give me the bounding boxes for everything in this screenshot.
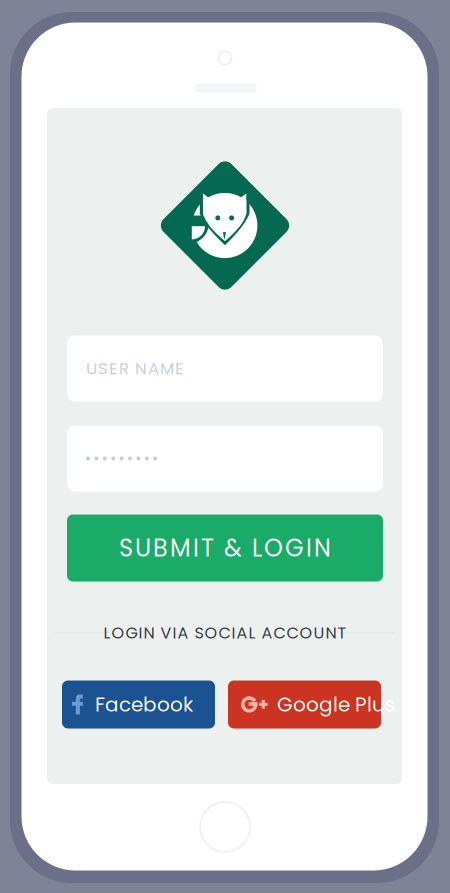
staticText: U S E R N A M E [86, 357, 184, 380]
staticText: S U B M I T & L O G I N [119, 531, 331, 565]
button[interactable]: Facebook [62, 680, 215, 728]
staticText: Google Plus [277, 690, 395, 718]
button[interactable]: S U B M I T & L O G I N [67, 514, 383, 581]
staticText: Facebook [95, 690, 193, 718]
staticText: L O G I N V I A S O C I A L A C C O U N … [103, 622, 346, 644]
button[interactable]: Google Plus [235, 680, 388, 728]
